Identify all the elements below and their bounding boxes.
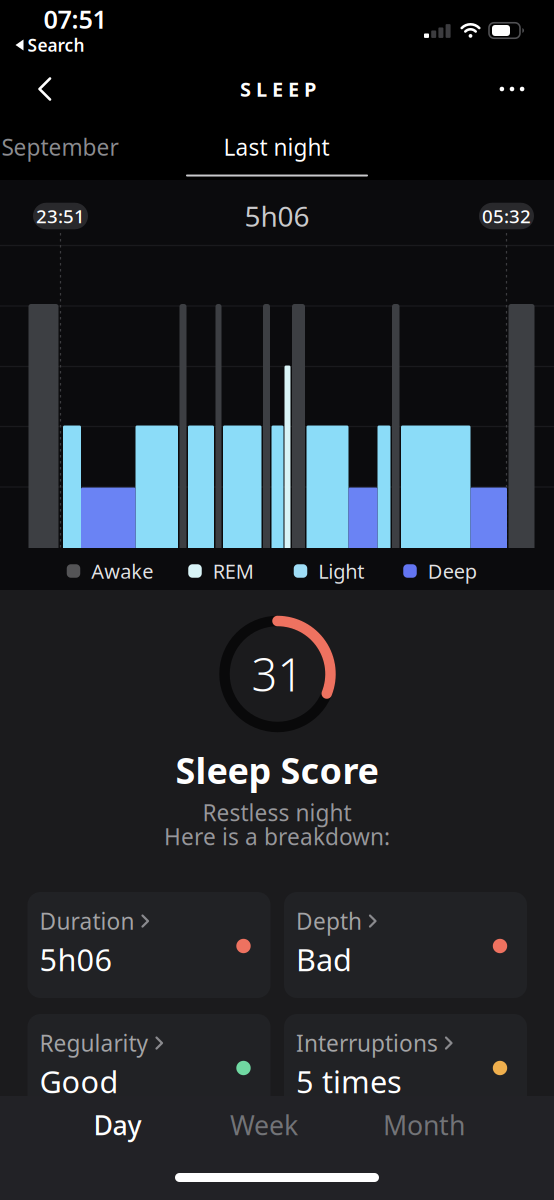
staticText: REM (213, 558, 254, 584)
button[interactable]: Duration (27, 892, 270, 998)
button[interactable]: September (1, 132, 118, 162)
staticText: Search (27, 33, 84, 56)
staticText: Awake (91, 558, 153, 584)
staticText: Light (318, 558, 364, 584)
staticText: Week (230, 1107, 298, 1143)
staticText: Sleep Score (175, 746, 378, 794)
button[interactable]: Week (230, 1107, 298, 1143)
button[interactable] (38, 77, 52, 100)
staticText: Day (93, 1107, 141, 1143)
staticText: 5h06 (39, 939, 112, 980)
staticText: Month (383, 1107, 465, 1143)
button[interactable]: Day (93, 1107, 141, 1143)
button[interactable]: Search (15, 33, 84, 56)
staticText: Restless night (202, 797, 351, 827)
staticText: 5h06 (244, 197, 309, 235)
button[interactable]: Month (383, 1107, 465, 1143)
staticText: Depth (296, 906, 362, 936)
staticText: Bad (296, 939, 352, 980)
button[interactable]: Regularity (27, 1014, 270, 1120)
staticText: S L E E P (240, 76, 316, 102)
button[interactable] (500, 87, 524, 91)
staticText: 07:51 (43, 2, 106, 36)
staticText: 31 (251, 644, 303, 704)
button[interactable]: Interruptions (284, 1014, 527, 1120)
staticText: Deep (428, 558, 477, 584)
staticText: Good (39, 1061, 118, 1102)
staticText: Here is a breakdown: (164, 821, 390, 851)
staticText: Last night (223, 132, 329, 162)
staticText: Regularity (39, 1028, 148, 1058)
staticText: 05:32 (482, 204, 531, 228)
button[interactable]: Depth (284, 892, 527, 998)
staticText: 23:51 (36, 204, 85, 228)
staticText: September (1, 132, 118, 162)
button[interactable]: Last night (223, 132, 329, 162)
staticText: Interruptions (296, 1028, 438, 1058)
staticText: 5 times (296, 1061, 402, 1102)
staticText: Duration (39, 906, 134, 936)
